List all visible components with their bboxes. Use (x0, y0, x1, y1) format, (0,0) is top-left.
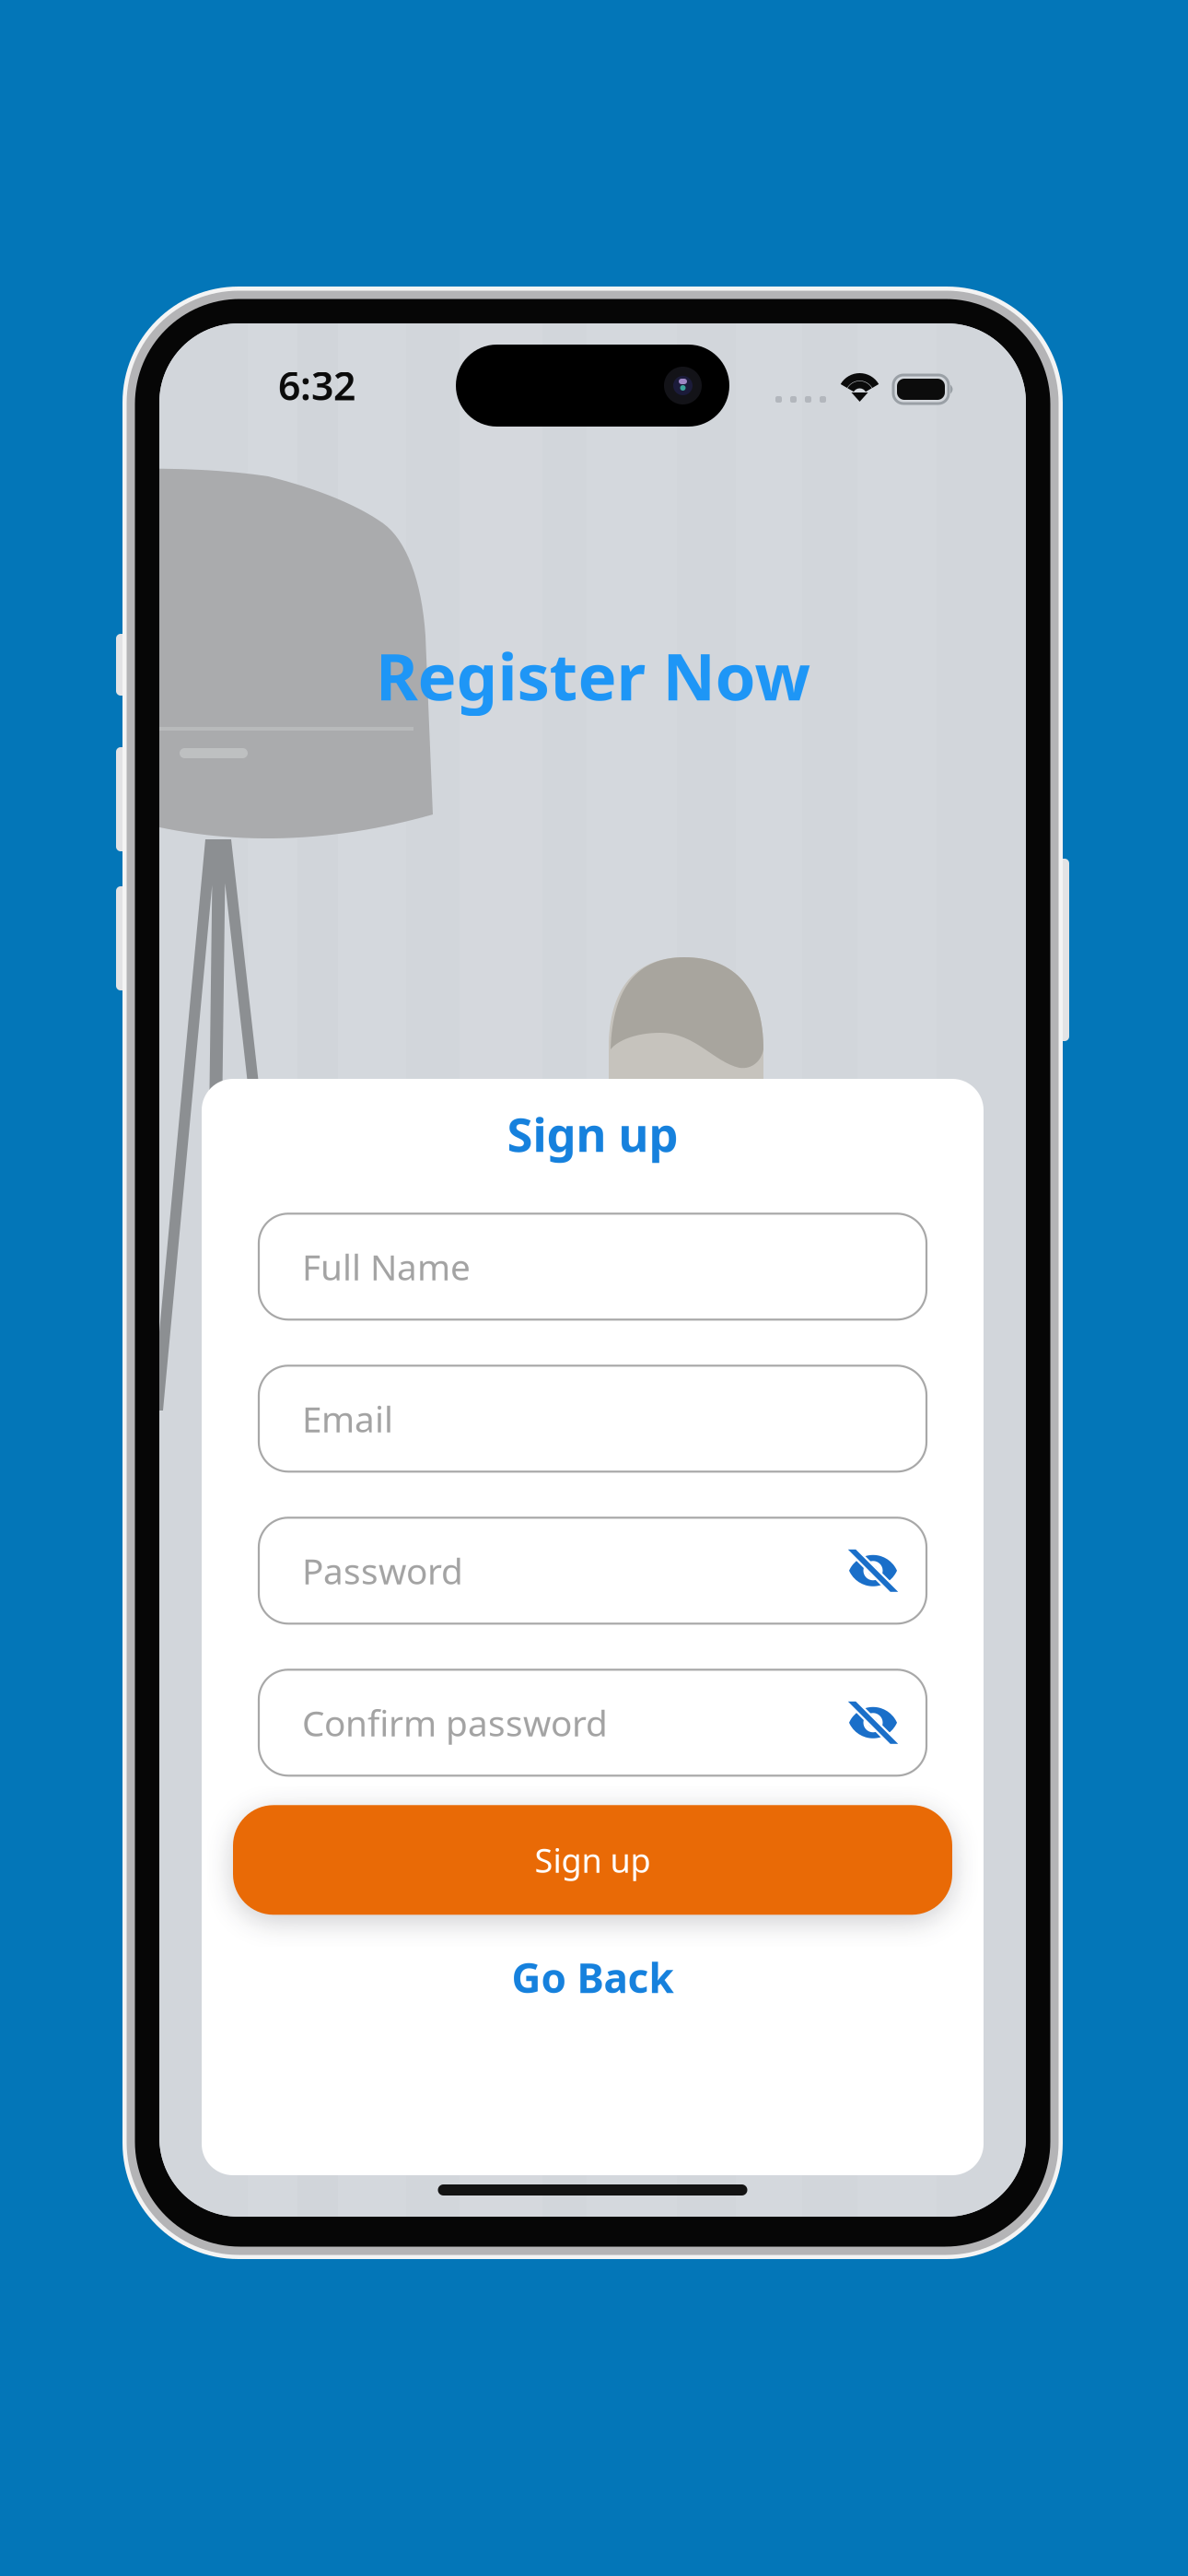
staticText: Full Name (302, 1243, 471, 1290)
button[interactable]: Confirm password (259, 1670, 926, 1776)
staticText: Register Now (375, 632, 810, 718)
button[interactable]: Sign up (233, 1805, 952, 1915)
staticText: 6:32 (278, 359, 355, 411)
staticText: Email (302, 1395, 393, 1442)
staticText: Go Back (512, 1951, 674, 2004)
staticText: Password (302, 1547, 463, 1594)
button[interactable]: Password (259, 1518, 926, 1624)
staticText: Sign up (535, 1838, 651, 1882)
staticText: Sign up (507, 1103, 678, 1165)
button[interactable]: Full Name (259, 1214, 926, 1320)
staticText: Confirm password (302, 1699, 608, 1746)
button[interactable]: Email (259, 1366, 926, 1472)
button[interactable]: Go Back (233, 1952, 952, 2003)
